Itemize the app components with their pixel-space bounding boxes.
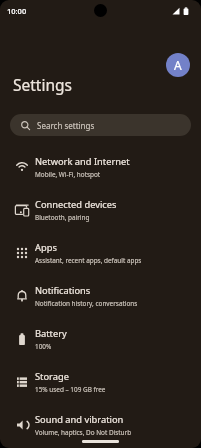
staticText: Search settings <box>37 120 95 131</box>
staticText: Battery <box>35 327 67 340</box>
staticText: Assistant, recent apps, default apps <box>35 256 142 265</box>
staticText: Volume, haptics, Do Not Disturb <box>35 428 132 437</box>
staticText: A <box>174 57 182 73</box>
staticText: Sound and vibration <box>35 413 124 426</box>
staticText: Network and Internet <box>35 155 130 168</box>
button[interactable]: Network and Internet <box>0 145 201 188</box>
staticText: 100% <box>35 342 52 351</box>
staticText: Connected devices <box>35 198 117 211</box>
staticText: 15% used – 109 GB free <box>35 385 106 394</box>
button[interactable]: Sound and vibration <box>0 403 201 446</box>
button[interactable]: Connected devices <box>0 188 201 231</box>
button[interactable]: Apps <box>0 231 201 274</box>
button[interactable]: Battery <box>0 317 201 360</box>
button[interactable]: Storage <box>0 360 201 403</box>
staticText: Notifications <box>35 284 91 297</box>
staticText: 10:00 <box>7 6 27 16</box>
button[interactable]: A <box>166 53 190 77</box>
staticText: Apps <box>35 241 57 254</box>
staticText: Mobile, Wi-Fi, hotspot <box>35 170 101 179</box>
button[interactable]: Search settings <box>10 114 191 136</box>
staticText: Settings <box>13 74 72 95</box>
staticText: Storage <box>35 370 69 383</box>
staticText: Notification history, conversations <box>35 299 138 308</box>
staticText: Bluetooth, pairing <box>35 213 90 222</box>
button[interactable]: Notifications <box>0 274 201 317</box>
